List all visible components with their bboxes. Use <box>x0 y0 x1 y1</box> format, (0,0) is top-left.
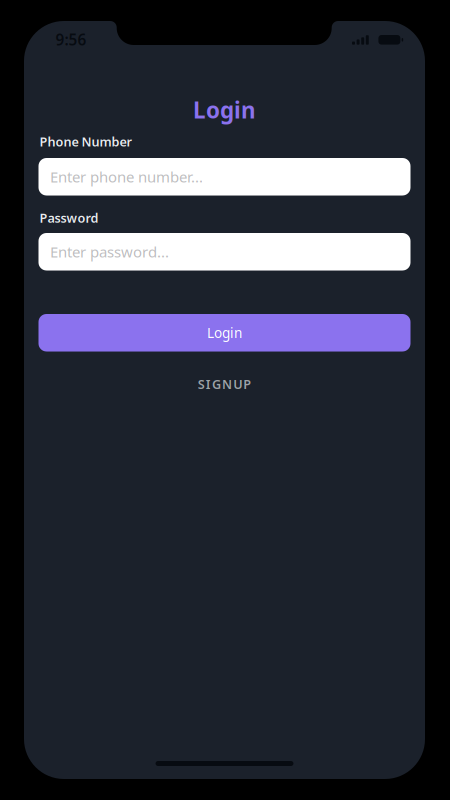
button[interactable]: Enter password... <box>38 233 410 270</box>
staticText: Login <box>207 323 242 342</box>
staticText: Password <box>39 209 98 226</box>
button[interactable]: SIGNUP <box>38 373 410 395</box>
button[interactable]: Enter phone number... <box>38 158 410 195</box>
staticText: Login <box>193 94 256 125</box>
staticText: Enter phone number... <box>50 167 203 187</box>
button[interactable]: Login <box>38 314 410 351</box>
staticText: SIGNUP <box>198 375 251 393</box>
staticText: Enter password... <box>50 242 169 262</box>
staticText: Phone Number <box>39 133 131 150</box>
staticText: 9:56 <box>55 29 86 50</box>
